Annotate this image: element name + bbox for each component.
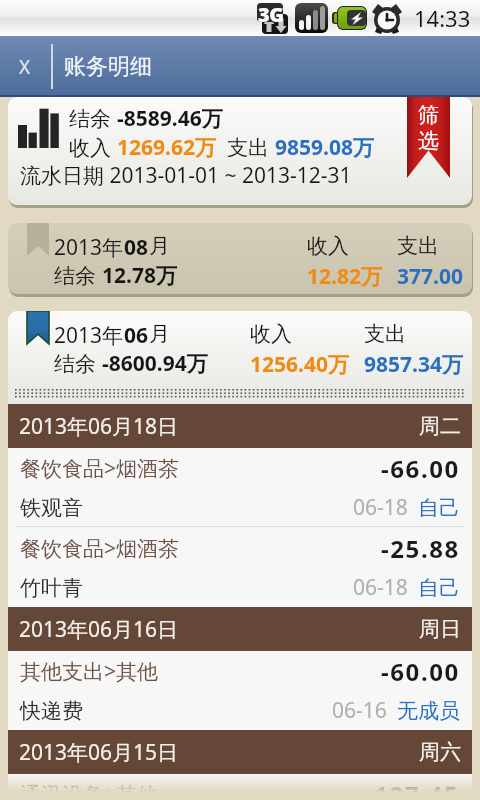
staticText: 通讯设备>其他 xyxy=(20,780,159,800)
staticText: 2013年06月18日 xyxy=(19,412,179,441)
staticText: 流水日期 2013-01-01 ~ 2013-12-31 xyxy=(20,161,352,190)
staticText: 收入 xyxy=(69,133,117,162)
staticText: 06-18 xyxy=(353,493,408,522)
button[interactable]: 其他支出>其他 xyxy=(8,651,472,730)
staticText: -25.88 xyxy=(381,532,460,565)
button[interactable]: 结余 xyxy=(8,97,472,205)
staticText: -60.00 xyxy=(381,655,460,688)
staticText: 支出 xyxy=(397,233,439,259)
staticText: 其他支出>其他 xyxy=(20,657,159,686)
staticText: -127.45 xyxy=(365,778,460,800)
button[interactable]: 2013年06月16日 xyxy=(19,607,461,651)
staticText: 377.00 xyxy=(397,262,463,291)
staticText: 周六 xyxy=(419,739,461,765)
staticText: 2013年06月16日 xyxy=(19,615,179,644)
button[interactable]: 2013年 xyxy=(8,311,472,404)
staticText: 结余 xyxy=(54,261,102,290)
staticText: 2013年 xyxy=(54,321,124,350)
staticText: 支出 xyxy=(216,133,275,162)
button[interactable]: X xyxy=(0,36,480,97)
staticText: 收入 xyxy=(250,321,292,347)
staticText: X xyxy=(19,54,31,80)
staticText: 自己 xyxy=(418,575,460,601)
staticText: 月 xyxy=(149,321,170,347)
staticText: 1269.62万 xyxy=(117,133,216,162)
staticText: 账务明细 xyxy=(64,53,152,81)
button[interactable]: 通讯设备>其他 xyxy=(8,774,472,800)
staticText: 周二 xyxy=(419,413,461,439)
staticText: 06 xyxy=(124,321,149,350)
staticText: 结余 xyxy=(54,349,102,378)
staticText: 筛 xyxy=(418,102,439,128)
button[interactable]: 餐饮食品>烟酒茶 xyxy=(8,528,472,607)
staticText: 9859.08万 xyxy=(275,133,374,162)
staticText: 餐饮食品>烟酒茶 xyxy=(20,534,180,563)
staticText: 2013年 xyxy=(54,233,124,262)
staticText: 14:33 xyxy=(414,3,471,33)
staticText: 08 xyxy=(124,233,149,262)
staticText: 3G xyxy=(258,1,284,28)
staticText: 周日 xyxy=(419,616,461,642)
staticText: 竹叶青 xyxy=(20,575,83,601)
staticText: 9857.34万 xyxy=(364,350,463,379)
staticText: -8600.94万 xyxy=(102,349,208,378)
staticText: 06-18 xyxy=(353,573,408,602)
staticText: -66.00 xyxy=(381,452,460,485)
staticText: 1256.40万 xyxy=(250,350,349,379)
staticText: 结余 xyxy=(69,104,117,133)
staticText: -8589.46万 xyxy=(117,104,223,133)
staticText: 无成员 xyxy=(397,698,460,724)
button[interactable]: 餐饮食品>烟酒茶 xyxy=(8,448,472,528)
staticText: 自己 xyxy=(418,495,460,521)
staticText: 选 xyxy=(418,128,439,154)
staticText: 快递费 xyxy=(20,698,83,724)
staticText: 收入 xyxy=(307,233,349,259)
button[interactable]: 2013年06月18日 xyxy=(19,404,461,448)
staticText: 2013年06月15日 xyxy=(19,738,179,767)
staticText: 06-16 xyxy=(332,696,387,725)
staticText: 12.82万 xyxy=(307,262,382,291)
button[interactable]: 2013年 xyxy=(8,223,472,294)
staticText: 月 xyxy=(149,233,170,259)
button[interactable]: 筛选 xyxy=(407,97,450,178)
staticText: 12.78万 xyxy=(102,261,177,290)
button[interactable]: 2013年06月15日 xyxy=(19,730,461,774)
staticText: 支出 xyxy=(364,321,406,347)
staticText: 餐饮食品>烟酒茶 xyxy=(20,454,180,483)
staticText: 铁观音 xyxy=(20,495,83,521)
